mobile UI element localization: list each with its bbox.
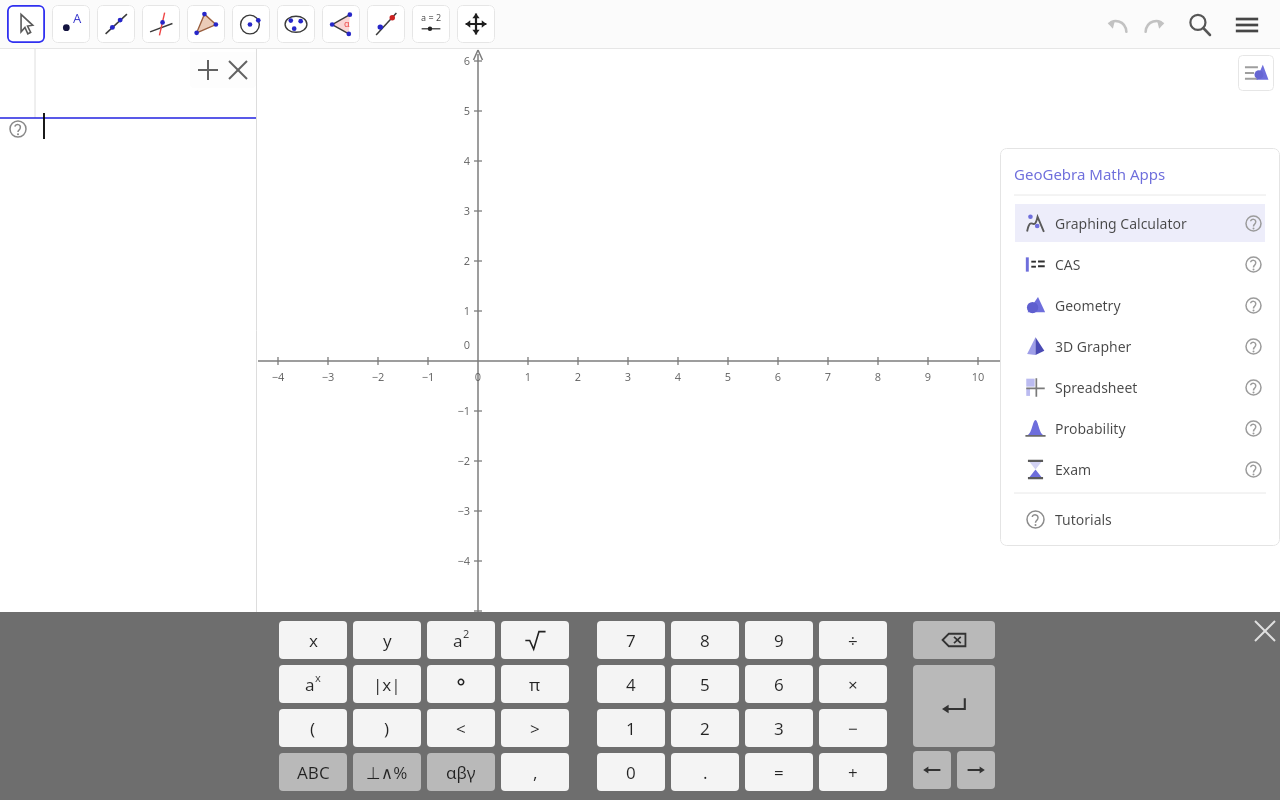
button[interactable]: Geometry	[1015, 286, 1265, 324]
button[interactable]: ABC	[279, 753, 347, 791]
button[interactable]: 9	[745, 621, 813, 659]
button[interactable]: )	[353, 709, 421, 747]
button[interactable]: About 3D Grapher	[1241, 334, 1265, 358]
button[interactable]: Point	[52, 5, 90, 43]
button[interactable]: Graphing Calculator	[1015, 204, 1265, 242]
button[interactable]: About Spreadsheet	[1241, 375, 1265, 399]
button[interactable]: About Geometry	[1241, 293, 1265, 317]
staticText: x	[309, 629, 318, 652]
button[interactable]: −	[819, 709, 887, 747]
button[interactable]: Polygon	[187, 5, 225, 43]
staticText: Spreadsheet	[1055, 378, 1138, 397]
staticText: >	[530, 717, 540, 740]
button[interactable]: Main menu	[1231, 9, 1263, 41]
button[interactable]: ×	[819, 665, 887, 703]
staticText: ABC	[297, 761, 330, 784]
staticText: 2	[700, 717, 710, 740]
button[interactable]: About CAS	[1241, 252, 1265, 276]
staticText: 4	[626, 673, 636, 696]
button[interactable]: Reflect about line	[367, 5, 405, 43]
button[interactable]: Input help	[6, 117, 30, 141]
staticText: )	[384, 717, 390, 740]
button[interactable]: 0	[597, 753, 665, 791]
button[interactable]: Redo	[1139, 9, 1171, 41]
button[interactable]: (	[279, 709, 347, 747]
staticText: =	[774, 761, 784, 784]
staticText: −4	[262, 369, 294, 384]
button[interactable]: Slider	[412, 5, 450, 43]
staticText: x	[315, 670, 321, 685]
button[interactable]: CAS	[1015, 245, 1265, 283]
button[interactable]: a	[427, 621, 495, 659]
button[interactable]: 3D Grapher	[1015, 327, 1265, 365]
button[interactable]: Tutorials	[1015, 501, 1265, 537]
button[interactable]: a	[279, 665, 347, 703]
button[interactable]: 5	[671, 665, 739, 703]
staticText: 0	[434, 337, 470, 352]
button[interactable]: ,	[501, 753, 569, 791]
button[interactable]: Undo	[1101, 9, 1133, 41]
staticText: 5	[434, 103, 470, 118]
button[interactable]: αβγ	[427, 753, 495, 791]
staticText: ⊥∧%	[366, 761, 408, 784]
button[interactable]: Move graphics view	[457, 5, 495, 43]
button[interactable]: 3	[745, 709, 813, 747]
button[interactable]: 7	[597, 621, 665, 659]
button[interactable]: Move cursor left	[913, 751, 951, 789]
button[interactable]: Backspace	[913, 621, 995, 659]
staticText: 0	[462, 369, 494, 384]
staticText: 3	[774, 717, 784, 740]
staticText: π	[529, 673, 541, 696]
button[interactable]: Exam	[1015, 450, 1265, 488]
button[interactable]: Enter	[913, 665, 995, 747]
button[interactable]: Square root	[501, 621, 569, 659]
button[interactable]: =	[745, 753, 813, 791]
staticText: 10	[962, 369, 994, 384]
button[interactable]: Angle	[322, 5, 360, 43]
button[interactable]: Close algebra view	[223, 55, 253, 85]
staticText: |x|	[373, 673, 401, 696]
button[interactable]: Close keyboard	[1249, 615, 1280, 647]
button[interactable]: Degree	[427, 665, 495, 703]
button[interactable]: 2	[671, 709, 739, 747]
button[interactable]: >	[501, 709, 569, 747]
staticText: Probability	[1055, 419, 1126, 438]
button[interactable]: Ellipse	[277, 5, 315, 43]
staticText: +	[848, 761, 858, 784]
button[interactable]: About Graphing Calculator	[1241, 211, 1265, 235]
staticText: 9	[774, 629, 784, 652]
button[interactable]: |x|	[353, 665, 421, 703]
button[interactable]: y	[353, 621, 421, 659]
button[interactable]: 6	[745, 665, 813, 703]
button[interactable]: 1	[597, 709, 665, 747]
button[interactable]: Line	[97, 5, 135, 43]
staticText: Exam	[1055, 460, 1092, 479]
button[interactable]: Spreadsheet	[1015, 368, 1265, 406]
button[interactable]: .	[671, 753, 739, 791]
staticText: .	[703, 761, 708, 784]
button[interactable]: <	[427, 709, 495, 747]
staticText: Tutorials	[1055, 510, 1112, 529]
button[interactable]: ⊥∧%	[353, 753, 421, 791]
button[interactable]: Perpendicular line	[142, 5, 180, 43]
button[interactable]: Circle	[232, 5, 270, 43]
button[interactable]: ÷	[819, 621, 887, 659]
staticText: −3	[312, 369, 344, 384]
button[interactable]: +	[819, 753, 887, 791]
button[interactable]: Probability	[1015, 409, 1265, 447]
button[interactable]: π	[501, 665, 569, 703]
staticText: 7	[812, 369, 844, 384]
staticText: 5	[700, 673, 710, 696]
button[interactable]: Move	[7, 5, 45, 43]
staticText: −4	[434, 553, 470, 568]
button[interactable]: About Probability	[1241, 416, 1265, 440]
button[interactable]: Move cursor right	[957, 751, 995, 789]
button[interactable]: x	[279, 621, 347, 659]
button[interactable]: Graphics view style bar	[1238, 55, 1274, 91]
button[interactable]: Search	[1184, 9, 1216, 41]
button[interactable]: About Exam	[1241, 457, 1265, 481]
button[interactable]: 8	[671, 621, 739, 659]
staticText: a	[453, 629, 463, 652]
button[interactable]: 4	[597, 665, 665, 703]
button[interactable]: Add input row	[193, 55, 223, 85]
